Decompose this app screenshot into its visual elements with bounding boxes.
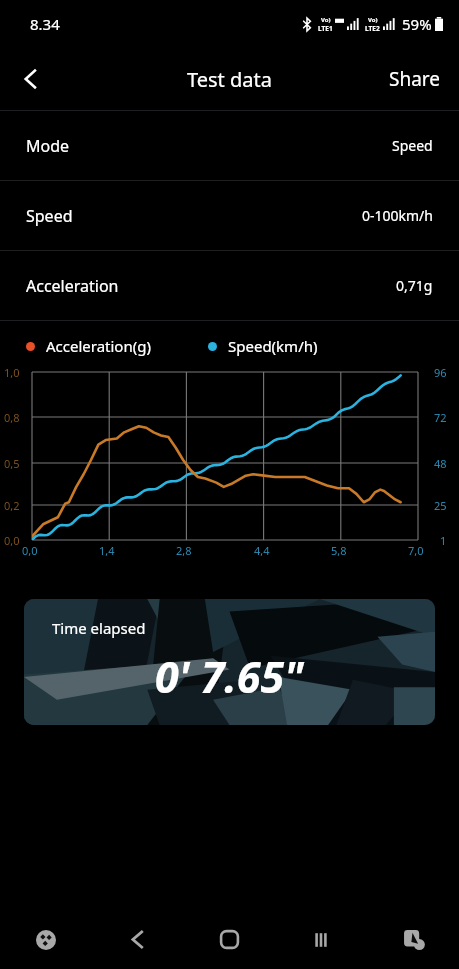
staticText: 2,8 bbox=[176, 543, 192, 558]
button[interactable]: Home bbox=[183, 910, 275, 969]
staticText: 1,0 bbox=[4, 365, 20, 380]
staticText: 25 bbox=[434, 498, 447, 513]
staticText: 72 bbox=[434, 410, 447, 425]
staticText: Time elapsed bbox=[52, 618, 146, 638]
staticText: Acceleration bbox=[26, 275, 119, 297]
staticText: 0,5 bbox=[4, 456, 20, 471]
staticText: 1,4 bbox=[99, 543, 115, 558]
staticText: 4,4 bbox=[254, 543, 270, 558]
staticText: 1 bbox=[440, 533, 447, 548]
staticText: 0,71g bbox=[396, 276, 433, 295]
staticText: 0' 7.65" bbox=[155, 647, 304, 706]
staticText: Speed(km/h) bbox=[228, 336, 318, 356]
button[interactable]: Back bbox=[91, 910, 183, 969]
button[interactable]: Time elapsed bbox=[24, 599, 435, 725]
staticText: Vo) bbox=[368, 16, 378, 24]
staticText: 0,8 bbox=[4, 410, 20, 425]
staticText: Vo) bbox=[321, 16, 331, 24]
staticText: 0,0 bbox=[22, 543, 38, 558]
button[interactable]: Back bbox=[0, 48, 62, 110]
button[interactable]: Accessibility menu bbox=[0, 910, 91, 969]
staticText: Test data bbox=[187, 66, 272, 93]
button[interactable]: Acceleration bbox=[0, 251, 459, 320]
staticText: 5,8 bbox=[331, 543, 347, 558]
staticText: 48 bbox=[434, 456, 447, 471]
button[interactable]: Speed bbox=[0, 181, 459, 250]
staticText: 0,2 bbox=[4, 498, 20, 513]
button[interactable]: Recent apps bbox=[275, 910, 367, 969]
button[interactable]: Share bbox=[371, 48, 459, 110]
staticText: Speed bbox=[392, 136, 433, 155]
button[interactable]: Mode bbox=[0, 111, 459, 180]
staticText: Speed bbox=[26, 205, 73, 227]
staticText: Mode bbox=[26, 135, 70, 157]
staticText: Acceleration(g) bbox=[46, 336, 151, 356]
staticText: 0-100km/h bbox=[362, 206, 433, 225]
staticText: 59% bbox=[402, 14, 432, 34]
staticText: LTE1 bbox=[318, 24, 333, 33]
staticText: Share bbox=[389, 66, 441, 92]
staticText: LTE2 bbox=[365, 24, 380, 33]
staticText: 7,0 bbox=[408, 543, 424, 558]
staticText: 8.34 bbox=[30, 14, 60, 34]
staticText: 0,0 bbox=[4, 533, 20, 548]
button[interactable]: Screenshot bbox=[367, 910, 459, 969]
staticText: 96 bbox=[434, 365, 447, 380]
